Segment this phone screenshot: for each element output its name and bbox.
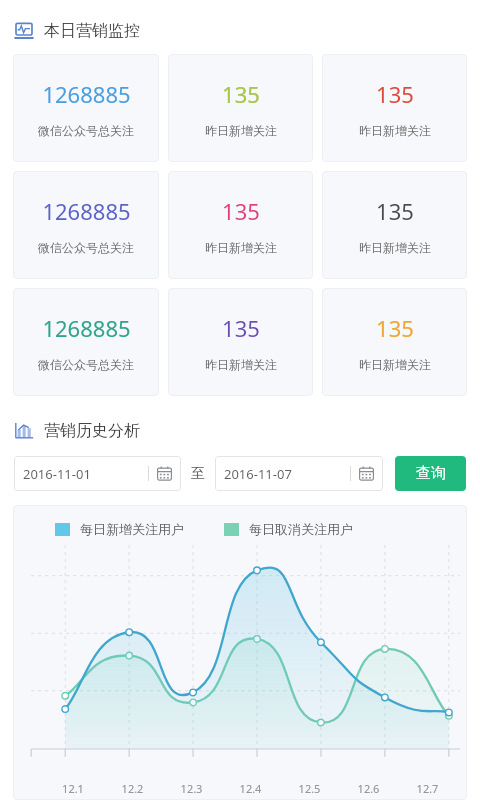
staticText: 微信公众号总关注 — [38, 240, 134, 255]
staticText: 1268885 — [42, 79, 131, 109]
button[interactable]: 135 — [168, 54, 313, 162]
staticText: 2016-11-07 — [224, 465, 350, 483]
staticText: 12.1 — [43, 781, 103, 796]
button[interactable]: 2016-11-07 — [215, 456, 383, 491]
staticText: 昨日新增关注 — [205, 357, 277, 372]
other: Pick date — [157, 466, 172, 481]
button[interactable]: 135 — [322, 54, 467, 162]
staticText: 本日营销监控 — [44, 21, 140, 41]
staticText: 昨日新增关注 — [205, 240, 277, 255]
button[interactable]: 135 — [322, 171, 467, 279]
staticText: 12.5 — [280, 781, 339, 796]
staticText: 12.4 — [221, 781, 280, 796]
staticText: 135 — [376, 196, 414, 226]
staticText: 营销历史分析 — [44, 421, 140, 441]
staticText: 昨日新增关注 — [359, 240, 431, 255]
staticText: 135 — [222, 196, 260, 226]
staticText: 昨日新增关注 — [359, 357, 431, 372]
staticText: 12.2 — [103, 781, 162, 796]
staticText: 135 — [376, 313, 414, 343]
other: Pick date — [359, 466, 374, 481]
button[interactable]: 135 — [168, 171, 313, 279]
staticText: 每日取消关注用户 — [249, 521, 353, 537]
staticText: 12.6 — [339, 781, 398, 796]
staticText: 微信公众号总关注 — [38, 123, 134, 138]
staticText: 135 — [376, 79, 414, 109]
staticText: 1268885 — [42, 196, 131, 226]
staticText: 1268885 — [42, 313, 131, 343]
button[interactable]: 1268885 — [13, 171, 159, 279]
staticText: 微信公众号总关注 — [38, 357, 134, 372]
staticText: 12.3 — [162, 781, 221, 796]
button[interactable]: 1268885 — [13, 54, 159, 162]
staticText: 昨日新增关注 — [205, 123, 277, 138]
button[interactable]: 1268885 — [13, 288, 159, 396]
staticText: 135 — [222, 313, 260, 343]
staticText: 135 — [222, 79, 260, 109]
staticText: 12.7 — [398, 781, 457, 796]
button[interactable]: 135 — [168, 288, 313, 396]
staticText: 昨日新增关注 — [359, 123, 431, 138]
staticText: 至 — [191, 465, 205, 483]
staticText: 2016-11-01 — [23, 465, 148, 483]
staticText: 查询 — [416, 464, 446, 483]
button[interactable]: 查询 — [395, 456, 466, 491]
button[interactable]: 135 — [322, 288, 467, 396]
button[interactable]: 2016-11-01 — [14, 456, 181, 491]
staticText: 每日新增关注用户 — [80, 521, 184, 537]
